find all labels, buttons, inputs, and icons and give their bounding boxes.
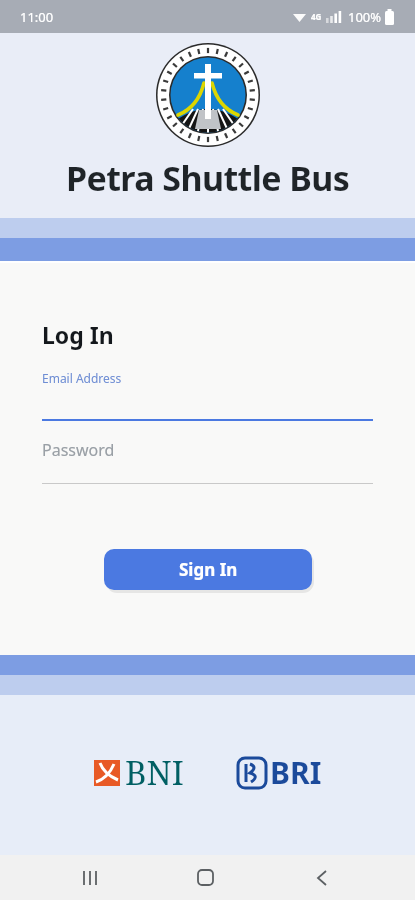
- button[interactable]: [298, 855, 346, 900]
- button[interactable]: BNI: [94, 750, 184, 795]
- staticText: Password: [42, 439, 115, 461]
- button[interactable]: BRI: [238, 752, 322, 793]
- staticText: BNI: [125, 750, 184, 795]
- staticText: Petra Shuttle Bus: [66, 155, 350, 201]
- staticText: Email Address: [42, 370, 122, 386]
- staticText: 11:00: [20, 8, 54, 26]
- button[interactable]: [181, 855, 229, 900]
- staticText: 4G: [311, 11, 322, 22]
- button[interactable]: [66, 855, 114, 900]
- staticText: 100%: [348, 8, 382, 26]
- staticText: BRI: [270, 752, 322, 793]
- staticText: Sign In: [179, 558, 238, 581]
- staticText: Log In: [42, 319, 114, 350]
- button[interactable]: Sign In: [104, 549, 312, 590]
